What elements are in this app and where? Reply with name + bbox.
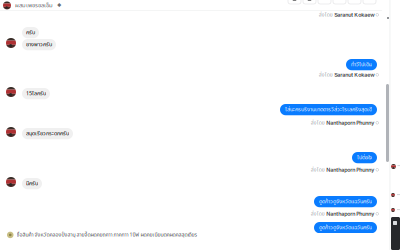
button[interactable]: ไปต่อใจ: [352, 152, 377, 163]
staticText: ส่งโดย: [311, 166, 325, 174]
staticText: ยางพาวครับ: [26, 40, 52, 49]
staticText: Nanthaporn Phunny: [326, 211, 374, 217]
staticText: ครับ: [26, 28, 35, 37]
staticText: ส่งโดย: [311, 210, 325, 218]
staticText: Saranut Kokaew: [334, 72, 374, 78]
staticText: ◆: [57, 3, 61, 8]
button[interactable]: สมุดเรียวกระดกครับ: [22, 128, 73, 139]
staticText: ผสมเพชรชลเอ็ม: [15, 1, 53, 10]
staticText: ชื่อสินค้า จังหวัดคลองปั่งสานุ สายจ้ิดผด…: [16, 231, 197, 239]
staticText: ไปต่อใจ: [357, 153, 372, 162]
staticText: ไส่นะครบริงานเทตดารวิส่วะโรเลคริงสุดเดี: [285, 105, 372, 114]
button[interactable]: ดูดก้าวดูจังหวัดแฉวันครับ: [314, 222, 377, 233]
staticText: สมุดเรียวกระดกครับ: [26, 129, 69, 138]
button[interactable]: Message action: [348, 0, 361, 4]
staticText: Nanthaporn Phunny: [326, 120, 374, 126]
button[interactable]: Message action: [288, 0, 301, 4]
staticText: ดูดก้าวดูจังหวัดแฉวันครับ: [319, 197, 372, 206]
staticText: ส่งโดย: [311, 119, 325, 127]
button[interactable]: ดูดก้าวดูจังหวัดแฉวันครับ: [314, 196, 377, 207]
button[interactable]: Message action: [363, 0, 376, 4]
button[interactable]: ยางพาวครับ: [22, 39, 56, 50]
button[interactable]: ทำวีไปเดิม: [346, 59, 377, 70]
button[interactable]: Message action: [333, 0, 346, 4]
button[interactable]: มีครับ: [22, 178, 42, 189]
staticText: มีครับ: [26, 179, 38, 188]
staticText: ดูดก้าวดูจังหวัดแฉวันครับ: [319, 223, 372, 232]
staticText: 15โลครับ: [26, 89, 46, 98]
button[interactable]: Message action: [318, 0, 331, 4]
button[interactable]: Message action: [303, 0, 316, 4]
staticText: ทำวีไปเดิม: [351, 60, 372, 69]
button[interactable]: 15โลครับ: [22, 88, 50, 99]
staticText: ส่งโดย: [319, 11, 333, 19]
button[interactable]: ไส่นะครบริงานเทตดารวิส่วะโรเลคริงสุดเดี: [280, 104, 377, 115]
staticText: Nanthaporn Phunny: [326, 167, 374, 173]
button[interactable]: ครับ: [22, 27, 39, 38]
staticText: ส่งโดย: [319, 71, 333, 79]
staticText: Saranut Kokaew: [334, 12, 374, 18]
